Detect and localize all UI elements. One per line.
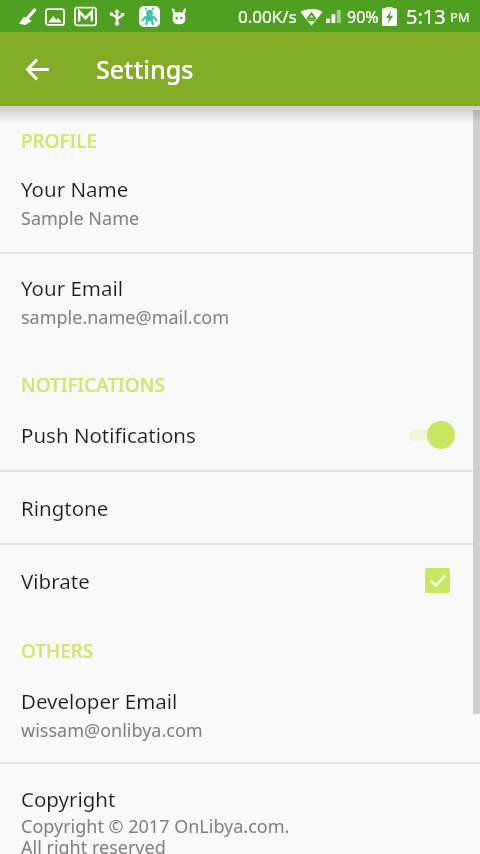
- button[interactable]: Your Name: [0, 153, 480, 253]
- staticText: Push Notifications: [21, 421, 409, 449]
- staticText: Your Email: [21, 274, 124, 302]
- staticText: PM: [450, 8, 470, 26]
- staticText: Settings: [96, 52, 194, 86]
- button[interactable]: Vibrate checkbox, checked: [425, 568, 450, 593]
- staticText: Ringtone: [21, 494, 480, 522]
- staticText: Developer Email: [21, 687, 178, 715]
- button[interactable]: Ringtone: [0, 471, 480, 544]
- staticText: Vibrate: [21, 567, 425, 595]
- staticText: OTHERS: [21, 638, 94, 664]
- staticText: wissam@onlibya.com: [21, 718, 203, 743]
- staticText: Copyright: [21, 785, 116, 813]
- button[interactable]: Back: [15, 47, 59, 91]
- button[interactable]: Developer Email: [0, 666, 480, 764]
- staticText: 90%: [347, 6, 379, 28]
- staticText: NOTIFICATIONS: [21, 372, 165, 398]
- button[interactable]: Your Email: [0, 253, 480, 351]
- staticText: 5:13: [406, 3, 446, 30]
- staticText: sample.name@mail.com: [21, 305, 230, 330]
- staticText: PROFILE: [21, 128, 97, 154]
- staticText: 0.00K/s: [238, 5, 297, 28]
- button[interactable]: Copyright: [0, 764, 480, 854]
- staticText: Sample Name: [21, 206, 140, 231]
- button[interactable]: Vibrate: [0, 544, 480, 617]
- staticText: Copyright © 2017 OnLibya.com. All right …: [21, 814, 290, 854]
- button[interactable]: Push Notifications: [0, 398, 480, 471]
- staticText: Your Name: [21, 175, 129, 203]
- button[interactable]: Push notifications toggle, on: [409, 421, 455, 449]
